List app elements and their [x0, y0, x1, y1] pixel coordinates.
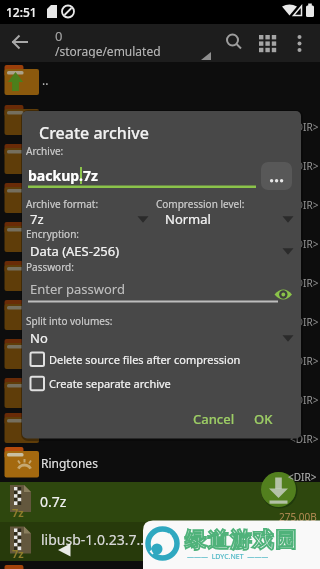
staticText: /storage/emulated — [55, 43, 161, 58]
button[interactable]: 7z — [30, 210, 150, 228]
button[interactable]: Enter password — [30, 280, 270, 298]
staticText: <DIR> — [290, 432, 319, 446]
staticText: Data (AES-256) — [30, 242, 120, 260]
staticText: Delete source files after compression — [49, 352, 241, 367]
button[interactable] — [220, 28, 246, 54]
staticText: 绿道游戏园 — [185, 527, 298, 553]
staticText: 0 — [55, 27, 63, 43]
staticText: <DIR> — [290, 315, 319, 329]
staticText: Create archive — [39, 122, 149, 143]
button[interactable] — [0, 62, 320, 101]
staticText: ——— LDYC.NET ——— — [187, 552, 269, 562]
button[interactable] — [288, 28, 312, 54]
staticText: <DIR> — [290, 198, 319, 212]
button[interactable] — [261, 162, 292, 190]
staticText: Ringtones — [41, 455, 98, 471]
button[interactable]: OK — [254, 410, 274, 427]
staticText: <DIR> — [290, 237, 319, 251]
staticText: <DIR> — [290, 159, 319, 173]
staticText: Create separate archive — [49, 376, 171, 391]
button[interactable] — [254, 28, 280, 54]
staticText: Cancel — [193, 410, 235, 427]
staticText: libusb-1.0.23.7... — [41, 530, 148, 547]
staticText: Archive format: — [26, 197, 99, 211]
button[interactable]: Normal — [165, 210, 285, 228]
button[interactable]: libusb-1.0.23.7... — [41, 530, 320, 547]
button[interactable]: Create separate archive — [49, 376, 297, 391]
staticText: 7z — [12, 546, 24, 560]
button[interactable]: backup.7z — [28, 165, 320, 186]
staticText: Enter password — [30, 280, 125, 298]
staticText: Archive: — [26, 144, 64, 158]
button[interactable]: No — [30, 329, 280, 347]
button[interactable]: Ringtones — [41, 455, 320, 471]
staticText: <DIR> — [290, 120, 319, 134]
staticText: .. — [42, 72, 49, 88]
staticText: Normal — [165, 210, 211, 228]
staticText: <DIR> — [290, 276, 319, 290]
staticText: 275.00B — [279, 510, 317, 522]
staticText: Split into volumes: — [26, 314, 113, 328]
staticText: 0.7z — [40, 492, 67, 510]
staticText: OK — [254, 410, 273, 427]
staticText: Encryption: — [26, 227, 80, 241]
staticText: 12:51 — [6, 4, 37, 20]
staticText: backup.7z — [28, 166, 98, 185]
staticText: <DIR> — [290, 354, 319, 368]
staticText: 7z — [12, 505, 24, 519]
button[interactable]: Data (AES-256) — [30, 242, 280, 260]
button[interactable] — [260, 470, 296, 506]
button[interactable] — [6, 28, 34, 56]
staticText: No — [30, 329, 48, 347]
staticText: 7z — [30, 210, 44, 228]
staticText: <DIR> — [288, 470, 317, 484]
staticText: <DIR> — [290, 393, 319, 407]
button[interactable]: Delete source files after compression — [49, 352, 297, 367]
button[interactable]: Cancel — [193, 410, 237, 427]
staticText: Compression level: — [156, 197, 245, 211]
button[interactable]: 0.7z — [40, 492, 320, 510]
staticText: Password: — [26, 260, 74, 274]
